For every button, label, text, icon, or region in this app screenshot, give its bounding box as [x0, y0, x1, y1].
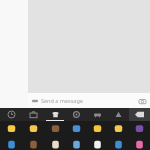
button[interactable]: Symbols — [66, 108, 87, 121]
button[interactable]: Emoji — [66, 121, 87, 136]
button[interactable]: Emoji — [44, 121, 66, 136]
button[interactable]: Recent — [0, 108, 22, 121]
button[interactable]: Backspace — [129, 108, 150, 121]
other: Keyboard — [31, 97, 39, 105]
button[interactable]: Emoji — [66, 136, 87, 150]
button[interactable]: Clothing — [44, 108, 66, 121]
button[interactable]: Emoji — [0, 136, 22, 150]
button[interactable]: Emoji — [108, 136, 129, 150]
button[interactable]: Emoji — [22, 121, 44, 136]
button[interactable]: Nature — [108, 108, 129, 121]
button[interactable]: Emoji — [87, 121, 108, 136]
button[interactable]: Emoji — [0, 121, 22, 136]
button[interactable]: Camera — [137, 96, 147, 106]
button[interactable]: Emoji — [108, 121, 129, 136]
button[interactable]: Emoji — [22, 136, 44, 150]
button[interactable]: Emoji — [129, 136, 150, 150]
button[interactable]: Travel — [87, 108, 108, 121]
button[interactable]: Objects — [22, 108, 44, 121]
staticText: Send a message — [41, 97, 83, 104]
button[interactable]: Emoji — [129, 121, 150, 136]
button[interactable]: Emoji — [87, 136, 108, 150]
button[interactable]: Keyboard — [28, 93, 150, 108]
button[interactable]: Emoji — [44, 136, 66, 150]
